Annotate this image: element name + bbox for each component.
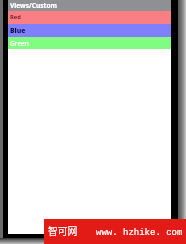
button[interactable]: [8, 24, 171, 38]
staticText: www. hzhike. com: [96, 228, 183, 238]
button[interactable]: [8, 0, 171, 11]
staticText: 智可网: [48, 224, 78, 238]
button[interactable]: [8, 11, 171, 24]
staticText: Green: [10, 39, 29, 48]
staticText: Red: [10, 13, 21, 21]
button[interactable]: 智可网: [44, 219, 186, 244]
staticText: Views/Custom: [10, 1, 57, 10]
button[interactable]: [8, 37, 171, 49]
staticText: Blue: [10, 26, 26, 35]
